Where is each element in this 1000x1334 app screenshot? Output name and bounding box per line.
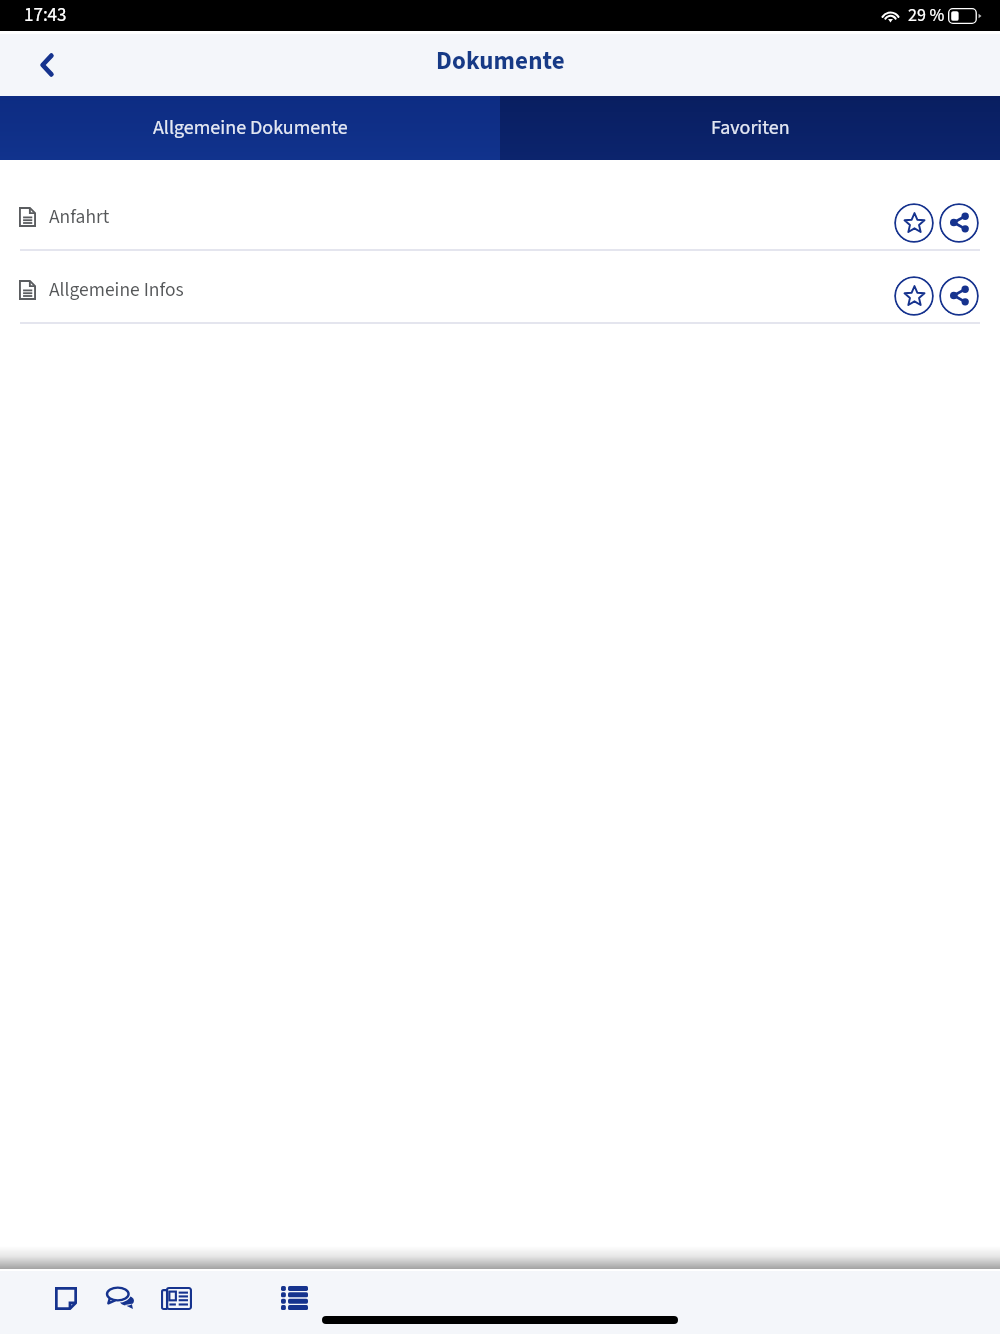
button[interactable]: Zurück xyxy=(24,42,70,88)
staticText: 17:43 xyxy=(24,2,67,29)
button[interactable]: Favoriten xyxy=(500,96,1000,160)
button[interactable]: Anfahrt xyxy=(0,178,1000,251)
button[interactable]: Allgemeine Dokumente xyxy=(0,96,500,160)
staticText: Allgemeine Infos xyxy=(49,276,184,304)
button[interactable]: Teilen xyxy=(939,203,979,243)
button[interactable]: Notizen xyxy=(44,1276,88,1320)
staticText: Anfahrt xyxy=(49,203,110,231)
button[interactable]: Neuigkeiten xyxy=(154,1276,198,1320)
button[interactable]: Teilen xyxy=(939,276,979,316)
button[interactable]: Chat xyxy=(98,1276,142,1320)
staticText: Allgemeine Dokumente xyxy=(153,114,348,142)
staticText: Dokumente xyxy=(436,43,565,79)
button[interactable]: Favorit xyxy=(894,276,934,316)
button[interactable]: Liste xyxy=(272,1276,316,1320)
staticText: Favoriten xyxy=(711,114,790,142)
button[interactable]: Allgemeine Infos xyxy=(0,251,1000,324)
staticText: 29 % xyxy=(908,3,945,29)
button[interactable]: Favorit xyxy=(894,203,934,243)
